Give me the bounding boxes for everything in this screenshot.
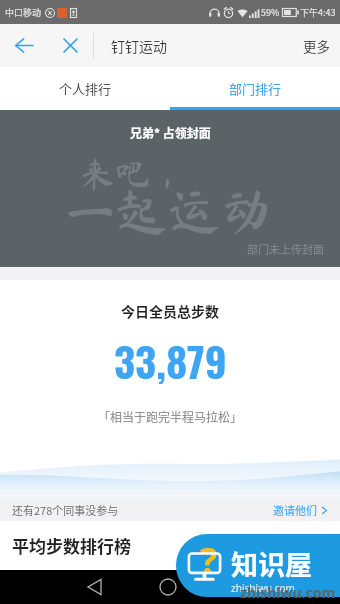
staticText: 平均步数排行榜 [12,533,131,558]
staticText: 更多 [303,36,330,56]
button[interactable]: 邀请他们 [261,502,340,518]
button[interactable]: 个人排行 [0,67,170,110]
staticText: 「相当于跑完半程马拉松」 [98,408,243,425]
button[interactable]: Close [47,24,93,67]
button[interactable]: 部门排行 [170,67,340,110]
staticText: 钉钉运动 [111,36,167,56]
staticText: 今日全员总步数 [121,301,219,321]
staticText: 下午4:43 [300,6,336,19]
staticText: 邀请他们 [273,502,317,518]
staticText: 33,879 [114,330,227,384]
staticText: 一起运动 [64,185,273,237]
staticText: 部门未上传封面 [247,241,324,257]
staticText: 59% [261,6,280,19]
staticText: 知识屋 [231,544,312,583]
button[interactable]: 更多 [293,24,340,67]
staticText: 部门排行 [229,79,282,98]
staticText: ? [200,536,218,580]
staticText: 来吧， [80,156,186,191]
staticText: 个人排行 [59,79,112,98]
staticText: zhishiwu.com [231,581,295,595]
staticText: 还有278个同事没参与 [12,502,119,518]
staticText: 兄弟* 占领封面 [130,124,211,141]
staticText: 中口移动 [5,6,42,19]
button[interactable]: Back [0,24,47,67]
staticText: zhishiwu.com [240,583,336,602]
